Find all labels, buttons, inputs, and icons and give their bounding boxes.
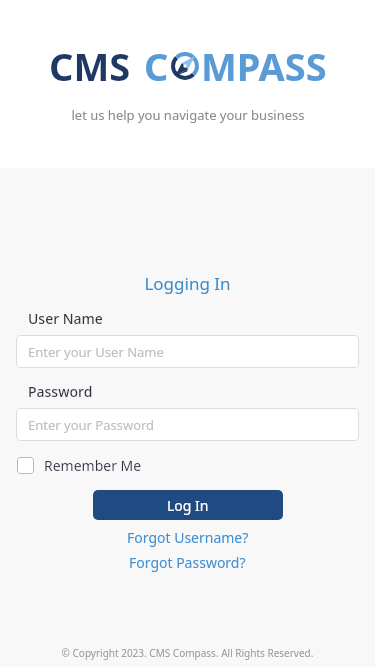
staticText: Password	[28, 382, 93, 401]
staticText: Enter your Password	[28, 416, 155, 434]
staticText: Forgot Username?	[127, 528, 249, 547]
staticText: Forgot Password?	[129, 553, 246, 572]
button[interactable]: Enter your Password	[16, 408, 359, 441]
staticText: Enter your User Name	[28, 343, 164, 361]
staticText: MPASS	[201, 40, 327, 92]
staticText: Log In	[167, 496, 209, 515]
button[interactable]: Remember Me	[16, 454, 143, 477]
staticText: C	[144, 40, 169, 92]
staticText: © Copyright 2023. CMS Compass. All Right…	[0, 646, 375, 660]
staticText: Remember Me	[44, 456, 142, 475]
button[interactable]: Enter your User Name	[16, 335, 359, 368]
button[interactable]: Log In	[93, 490, 283, 520]
staticText: CMS	[49, 40, 131, 92]
staticText: let us help you navigate your business	[71, 106, 305, 124]
staticText: User Name	[28, 309, 103, 328]
button[interactable]: Forgot Password?	[123, 552, 252, 573]
button[interactable]: Forgot Username?	[121, 527, 255, 548]
staticText: Logging In	[0, 272, 375, 295]
